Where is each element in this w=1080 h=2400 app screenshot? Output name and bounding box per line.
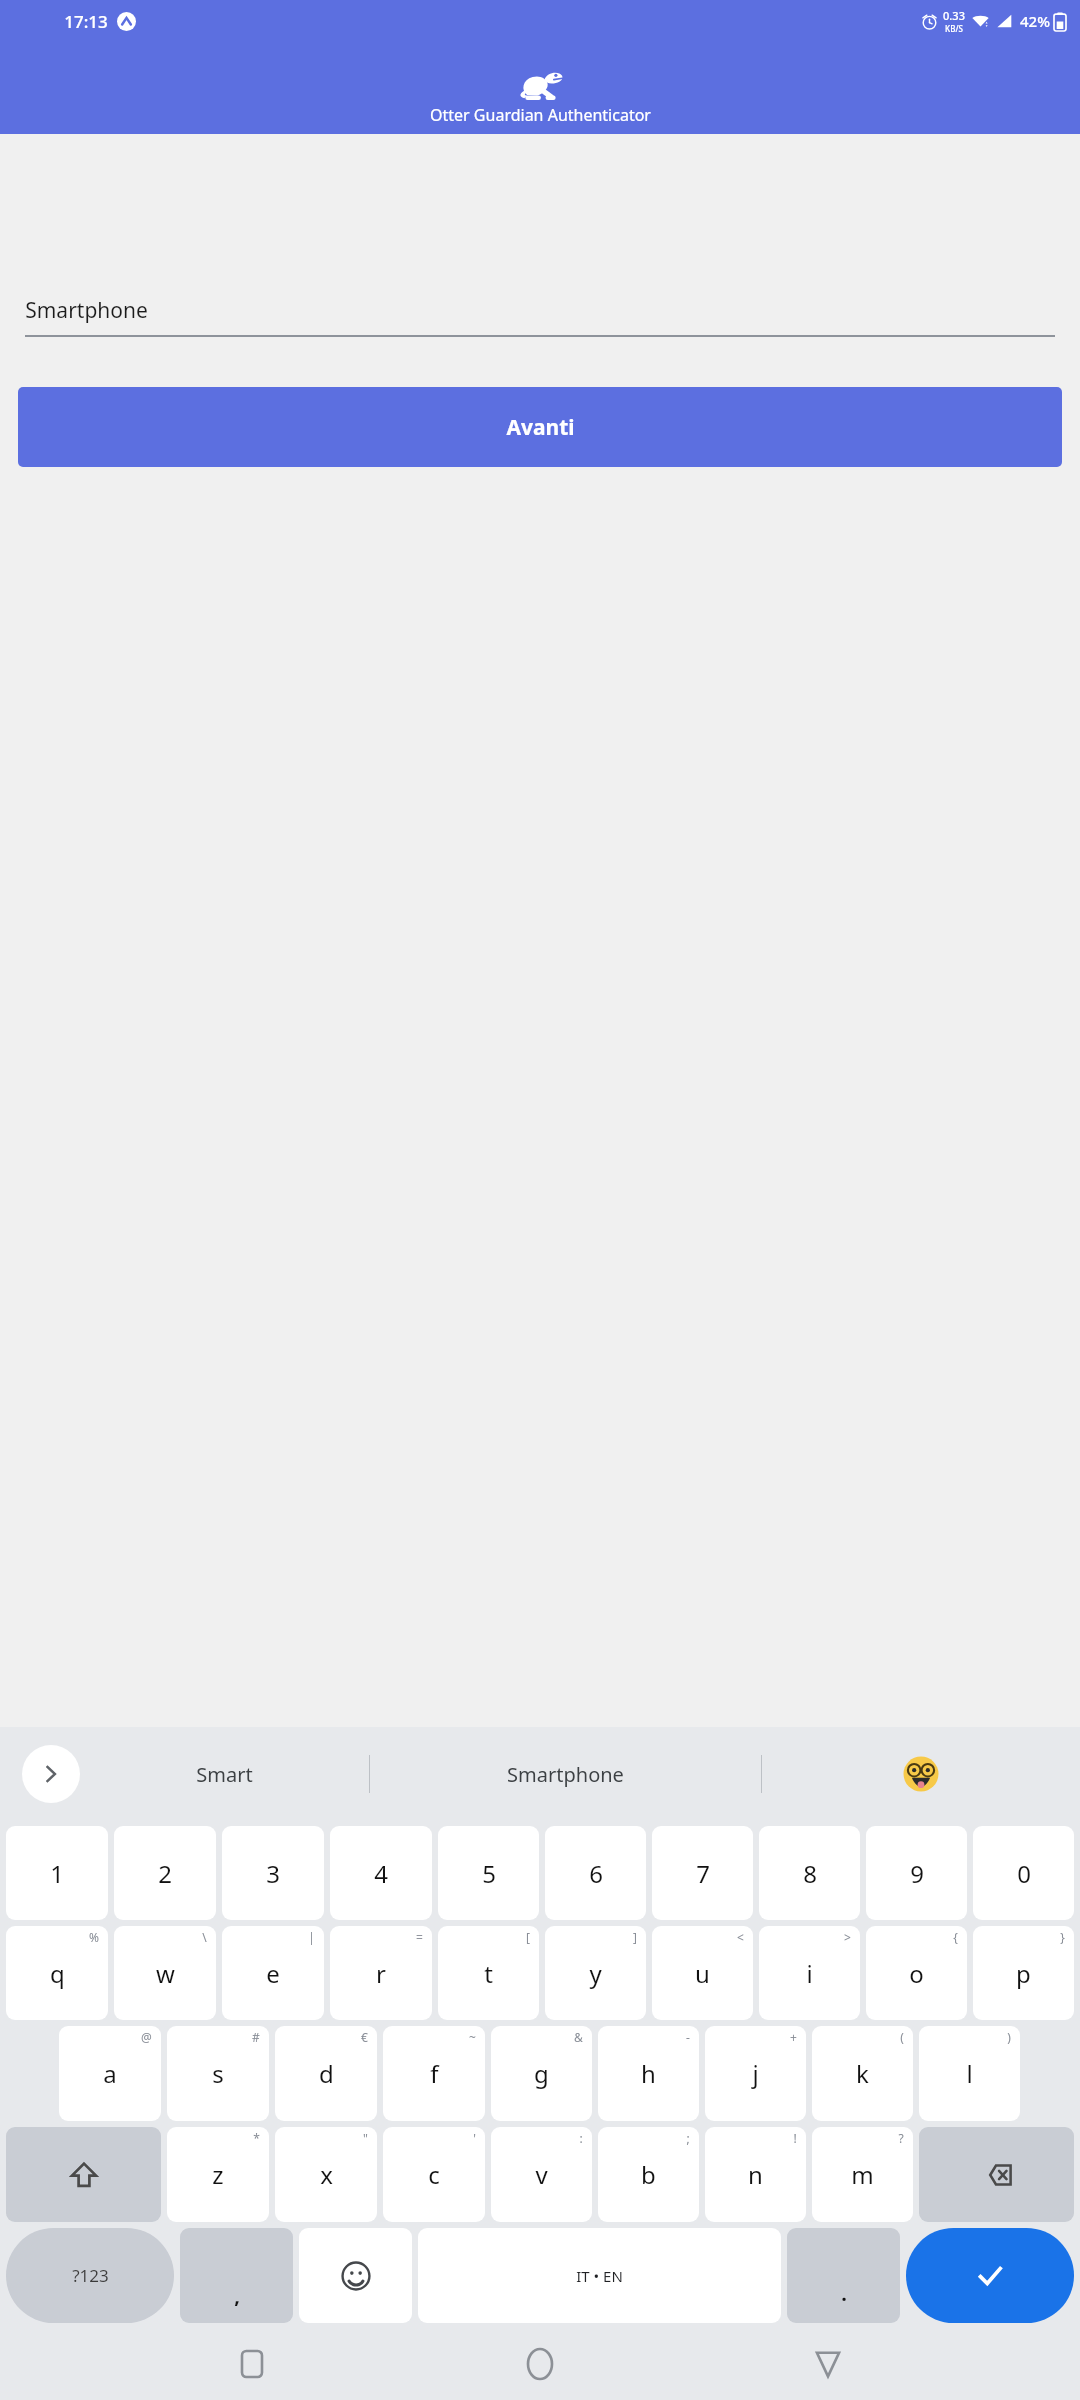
button[interactable]: 8 [759, 1826, 860, 1920]
button[interactable]: 9 [866, 1826, 967, 1920]
button[interactable]: 2 [114, 1826, 216, 1920]
staticText: ) [1007, 2029, 1011, 2045]
staticText: : [579, 2130, 583, 2146]
button[interactable]: [ [438, 1926, 539, 2020]
button[interactable]: IT • EN [418, 2228, 781, 2323]
staticText: j [752, 2057, 759, 2090]
button[interactable]: Smartphone [25, 285, 1055, 335]
staticText: i [806, 1957, 813, 1990]
button[interactable]: , [180, 2228, 293, 2323]
staticText: 6 [589, 1857, 603, 1890]
staticText: 42% [1020, 11, 1050, 31]
button[interactable]: Home [504, 2328, 576, 2400]
staticText: - [686, 2029, 690, 2045]
button[interactable]: < [652, 1926, 753, 2020]
button[interactable]: - [598, 2026, 699, 2121]
staticText: v [535, 2158, 548, 2191]
staticText: € [361, 2029, 368, 2045]
staticText: 0.33 [943, 8, 965, 23]
staticText: 2 [158, 1857, 172, 1890]
staticText: a [103, 2057, 117, 2090]
staticText: IT • EN [576, 2266, 623, 2286]
button[interactable]: ?123 [6, 2228, 174, 2323]
button[interactable]: . [787, 2228, 900, 2323]
staticText: s [212, 2057, 224, 2090]
button[interactable]: } [973, 1926, 1074, 2020]
staticText: g [534, 2057, 549, 2090]
staticText: < [737, 1929, 744, 1945]
button[interactable]: % [6, 1926, 108, 2020]
button[interactable]: { [866, 1926, 967, 2020]
button[interactable]: ] [545, 1926, 646, 2020]
button[interactable]: Back [792, 2328, 864, 2400]
button[interactable]: Emoji [299, 2228, 412, 2323]
button[interactable]: \ [114, 1926, 216, 2020]
staticText: x [320, 2158, 333, 2191]
staticText: ~ [469, 2029, 476, 2045]
button[interactable]: # [167, 2026, 269, 2121]
staticText: Smartphone [25, 296, 148, 325]
button[interactable]: ; [598, 2127, 699, 2222]
staticText: { [953, 1929, 958, 1945]
staticText: u [695, 1957, 710, 1990]
button[interactable]: Recents [216, 2328, 288, 2400]
button[interactable]: 6 [545, 1826, 646, 1920]
staticText: Otter Guardian Authenticator [430, 104, 651, 126]
button[interactable]: Shift [6, 2127, 161, 2222]
button[interactable]: 7 [652, 1826, 753, 1920]
button[interactable]: ' [383, 2127, 485, 2222]
button[interactable]: € [275, 2026, 377, 2121]
staticText: 17:13 [64, 10, 108, 33]
staticText: * [253, 2130, 260, 2146]
button[interactable]: * [167, 2127, 269, 2222]
button[interactable]: Backspace [919, 2127, 1074, 2222]
button[interactable]: Expand suggestions [22, 1745, 80, 1803]
button[interactable]: ~ [383, 2026, 485, 2121]
button[interactable]: 1 [6, 1826, 108, 1920]
button[interactable]: 5 [438, 1826, 539, 1920]
staticText: > [844, 1929, 851, 1945]
staticText: ? [898, 2130, 904, 2146]
staticText: r [376, 1957, 386, 1990]
staticText: n [748, 2158, 763, 2191]
button[interactable]: 3 [222, 1826, 324, 1920]
button[interactable]: ( [812, 2026, 913, 2121]
staticText: ; [686, 2130, 690, 2146]
staticText: | [308, 1929, 315, 1945]
staticText: @ [141, 2029, 152, 2045]
staticText: Avanti [506, 413, 575, 442]
button[interactable]: ) [919, 2026, 1020, 2121]
button[interactable]: 4 [330, 1826, 432, 1920]
button[interactable]: > [759, 1926, 860, 2020]
staticText: , [234, 2282, 240, 2309]
staticText: ! [793, 2130, 797, 2146]
staticText: % [89, 1929, 99, 1945]
staticText: 4 [374, 1857, 388, 1890]
staticText: ' [473, 2130, 476, 2146]
button[interactable]: = [330, 1926, 432, 2020]
button[interactable]: & [491, 2026, 592, 2121]
staticText: } [1060, 1929, 1065, 1945]
button[interactable]: + [705, 2026, 806, 2121]
button[interactable]: : [491, 2127, 592, 2222]
staticText: Smartphone [507, 1761, 624, 1788]
button[interactable]: 0 [973, 1826, 1074, 1920]
button[interactable]: | [222, 1926, 324, 2020]
button[interactable]: Avanti [18, 387, 1062, 467]
button[interactable]: @ [59, 2026, 161, 2121]
button[interactable]: " [275, 2127, 377, 2222]
button[interactable]: ? [812, 2127, 913, 2222]
staticText: 7 [696, 1857, 710, 1890]
staticText: 5 [482, 1857, 496, 1890]
staticText: . [841, 2280, 847, 2307]
staticText: 9 [910, 1857, 924, 1890]
button[interactable]: Enter [906, 2228, 1074, 2323]
staticText: ] [633, 1929, 637, 1945]
staticText: q [50, 1957, 65, 1990]
staticText: b [641, 2158, 656, 2191]
staticText: 0 [1017, 1857, 1031, 1890]
staticText: # [252, 2029, 260, 2045]
staticText: KB/S [945, 23, 963, 34]
staticText: p [1016, 1957, 1031, 1990]
button[interactable]: ! [705, 2127, 806, 2222]
